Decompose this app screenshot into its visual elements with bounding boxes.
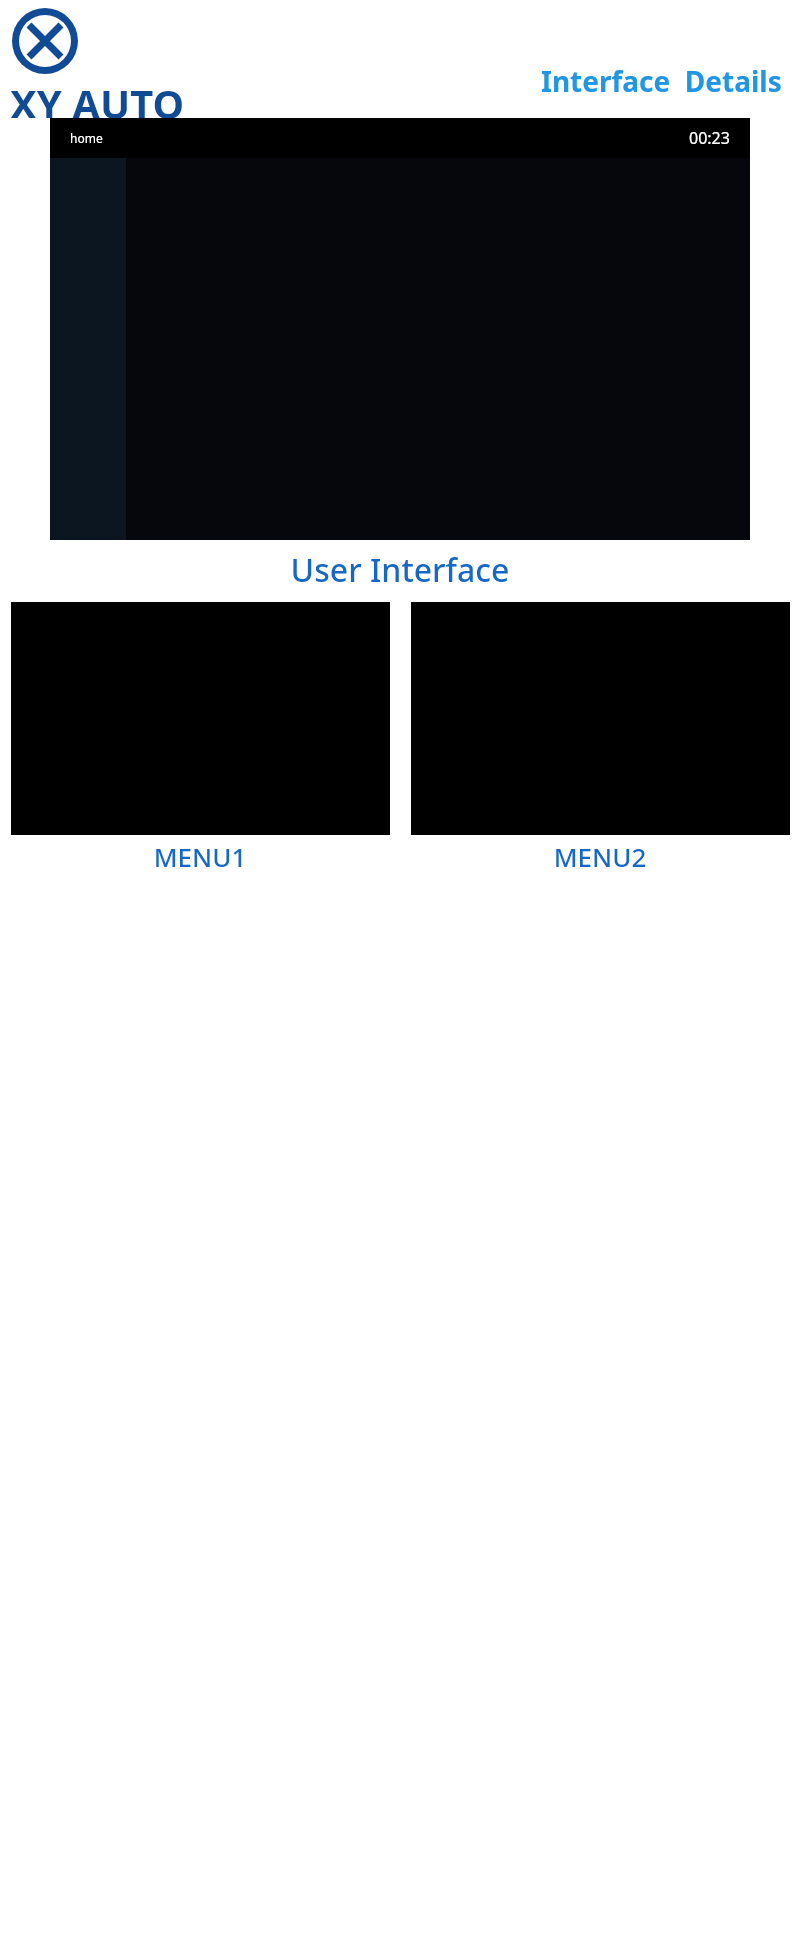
staticText: home [70, 130, 103, 146]
staticText: XY AUTO [10, 76, 185, 118]
staticText: 00:23 [689, 127, 730, 149]
staticText: Interface Details [541, 62, 782, 100]
staticText: MENU1 [0, 839, 400, 874]
staticText: MENU2 [400, 839, 800, 874]
staticText: User Interface [0, 548, 800, 592]
